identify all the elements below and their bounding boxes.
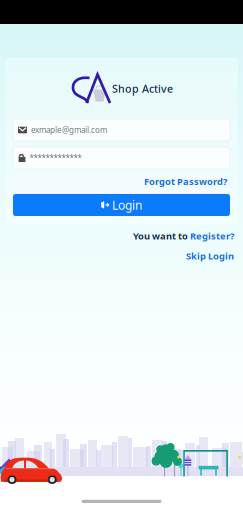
staticText: *************	[29, 153, 81, 163]
staticText: exmaple@gmail.com	[31, 125, 107, 135]
button[interactable]: Skip Login	[186, 250, 234, 262]
staticText: You want to	[133, 230, 190, 242]
button[interactable]: *************	[13, 147, 230, 169]
staticText: Login	[112, 197, 142, 213]
staticText: Forgot Password?	[144, 175, 227, 188]
staticText: Shop Active	[112, 81, 173, 96]
button[interactable]: Register?	[190, 230, 234, 242]
staticText: Register?	[190, 230, 234, 242]
button[interactable]: Forgot Password?	[143, 173, 228, 190]
staticText: Skip Login	[186, 250, 234, 262]
button[interactable]: exmaple@gmail.com	[13, 119, 230, 141]
button[interactable]: Login	[13, 194, 230, 216]
